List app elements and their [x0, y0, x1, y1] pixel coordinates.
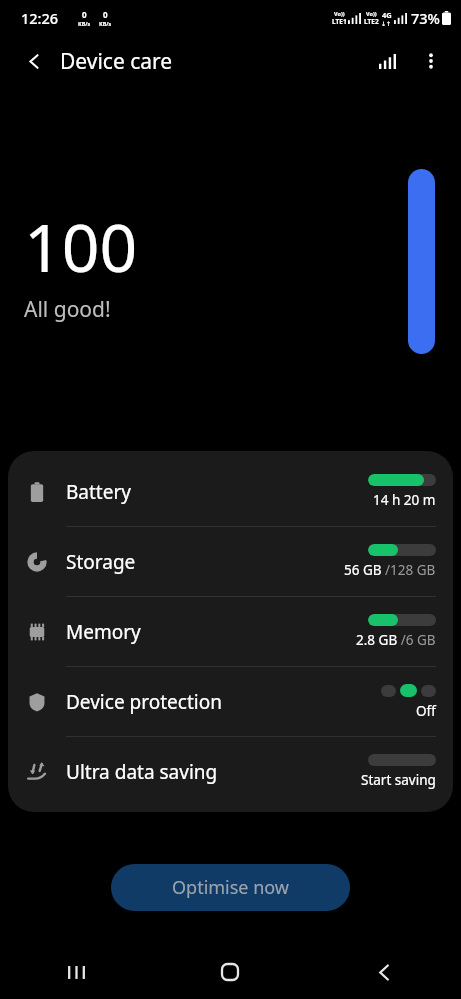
staticText: LTE1	[332, 17, 347, 26]
staticText: 0	[103, 9, 108, 20]
staticText: Ultra data saving	[66, 759, 361, 785]
staticText: Vo))	[366, 10, 377, 17]
staticText: Memory	[66, 619, 356, 645]
staticText: Vo))	[334, 10, 345, 17]
staticText: 14 h 20 m	[373, 491, 436, 509]
staticText: 100	[24, 201, 138, 291]
staticText: LTE2	[364, 17, 379, 26]
staticText: KB/s	[78, 20, 91, 27]
staticText: ↓↑	[381, 20, 392, 27]
staticText: 73%	[411, 8, 440, 28]
button[interactable]: Optimise now	[111, 864, 350, 911]
button[interactable]: Battery	[8, 457, 453, 526]
staticText: Battery	[66, 479, 368, 505]
staticText: 0	[82, 9, 87, 20]
button[interactable]: Memory	[8, 597, 453, 666]
button[interactable]: Back	[307, 945, 461, 999]
staticText: 56 GB /128 GB	[344, 561, 436, 579]
button[interactable]: More options	[409, 39, 453, 83]
button[interactable]: Ultra data saving	[8, 737, 453, 806]
button[interactable]: Back	[14, 41, 54, 81]
staticText: Storage	[66, 549, 344, 575]
button[interactable]: Home	[153, 945, 307, 999]
staticText: Off	[416, 702, 436, 720]
staticText: Device protection	[66, 689, 381, 715]
button[interactable]: Recent apps	[0, 945, 153, 999]
button[interactable]: Storage	[8, 527, 453, 596]
staticText: 2.8 GB /6 GB	[356, 631, 436, 649]
staticText: 4G	[382, 10, 392, 20]
staticText: Device care	[60, 47, 173, 76]
staticText: 12:26	[21, 8, 59, 28]
staticText: Start saving	[361, 771, 436, 789]
button[interactable]: Device protection	[8, 667, 453, 736]
staticText: Optimise now	[172, 875, 289, 900]
staticText: KB/s	[99, 20, 112, 27]
staticText: All good!	[24, 295, 111, 324]
button[interactable]: Usage statistics	[365, 39, 409, 83]
